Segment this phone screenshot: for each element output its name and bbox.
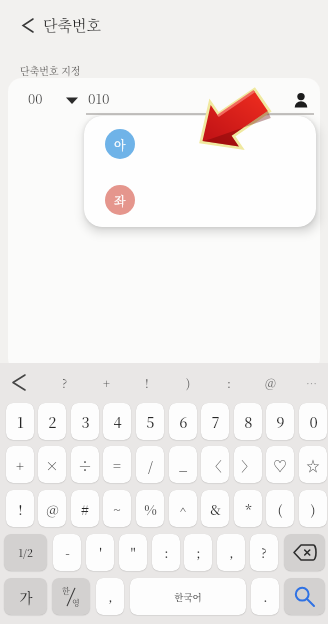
button[interactable]: 단축번호 (0, 0, 328, 50)
button[interactable]: × (38, 446, 66, 483)
staticText: : (227, 374, 231, 391)
button[interactable]: 0 (299, 403, 327, 440)
button[interactable]: ! (133, 367, 161, 398)
staticText: ! (145, 374, 149, 391)
staticText: 가 (19, 587, 33, 606)
staticText: " (130, 543, 136, 562)
button[interactable]: @ (256, 367, 284, 398)
button[interactable]: 〉 (234, 446, 262, 483)
staticText: , (229, 543, 234, 562)
staticText: 6 (179, 411, 188, 432)
staticText: : (164, 543, 169, 562)
staticText: 〉 (241, 455, 255, 474)
button[interactable]: 가 (4, 578, 47, 615)
staticText: 7 (211, 411, 220, 432)
staticText: ) (310, 499, 316, 518)
button[interactable]: 6 (169, 403, 197, 440)
button[interactable]: 9 (266, 403, 294, 440)
staticText: 단축번호 (43, 14, 101, 36)
staticText: 한국어 (174, 590, 202, 604)
button[interactable]: 좌 (105, 185, 135, 215)
button[interactable]: 〈 (201, 446, 229, 483)
button[interactable]: ~ (103, 490, 131, 527)
staticText: ÷ (78, 455, 92, 474)
staticText: @ (46, 499, 59, 518)
button[interactable]: 아 (105, 129, 135, 159)
button[interactable]: = (103, 446, 131, 483)
button[interactable]: : (152, 534, 180, 571)
button[interactable]: 8 (234, 403, 262, 440)
button[interactable]: 1/2 (4, 534, 47, 571)
staticText: 아 (114, 136, 126, 153)
button[interactable]: 한 (52, 578, 90, 615)
button[interactable]: - (53, 534, 81, 571)
button[interactable]: ⋯ (297, 367, 325, 398)
staticText: ~ (113, 499, 121, 518)
staticText: 8 (244, 411, 253, 432)
button[interactable]: @ (38, 490, 66, 527)
button[interactable]: 2 (38, 403, 66, 440)
button[interactable]: ; (184, 534, 212, 571)
staticText: & (210, 499, 221, 518)
button[interactable] (284, 578, 325, 615)
staticText: ! (18, 499, 23, 518)
staticText: 010 (88, 88, 110, 107)
button[interactable]: 7 (201, 403, 229, 440)
staticText: * (245, 499, 252, 518)
button[interactable]: ? (250, 534, 278, 571)
button[interactable]: # (71, 490, 99, 527)
button[interactable]: 00 (28, 89, 43, 108)
button[interactable]: , (96, 578, 124, 615)
button[interactable]: % (136, 490, 164, 527)
staticText: _ (179, 455, 187, 474)
button[interactable]: ? (51, 367, 79, 398)
staticText: - (65, 543, 70, 562)
staticText: × (45, 455, 59, 474)
button[interactable]: " (119, 534, 147, 571)
staticText: 5 (146, 411, 155, 432)
button[interactable]: . (251, 578, 279, 615)
button[interactable]: 3 (71, 403, 99, 440)
staticText: 좌 (114, 192, 126, 209)
button[interactable]: & (201, 490, 229, 527)
staticText: ' (99, 543, 102, 562)
staticText: ? (261, 543, 267, 562)
button[interactable]: ' (86, 534, 114, 571)
staticText: . (263, 587, 268, 606)
button[interactable]: ( (266, 490, 294, 527)
button[interactable]: ) (299, 490, 327, 527)
button[interactable]: / (136, 446, 164, 483)
staticText: 3 (81, 411, 90, 432)
button[interactable]: 4 (103, 403, 131, 440)
button[interactable]: 1 (6, 403, 34, 440)
button[interactable] (284, 534, 325, 571)
staticText: 0 (309, 411, 318, 432)
button[interactable] (13, 375, 25, 390)
button[interactable]: 한국어 (130, 578, 246, 615)
staticText: 한 (62, 585, 70, 596)
staticText: % (144, 499, 157, 518)
button[interactable]: + (92, 367, 120, 398)
staticText: ? (62, 374, 68, 391)
button[interactable] (292, 88, 310, 110)
staticText: , (108, 587, 113, 606)
button[interactable]: , (217, 534, 245, 571)
button[interactable]: ^ (169, 490, 197, 527)
button[interactable]: 5 (136, 403, 164, 440)
button[interactable]: * (234, 490, 262, 527)
button[interactable]: ÷ (71, 446, 99, 483)
staticText: 9 (276, 411, 285, 432)
button[interactable] (66, 97, 78, 104)
staticText: + (16, 455, 24, 474)
staticText: + (103, 374, 110, 391)
button[interactable]: ) (174, 367, 202, 398)
button[interactable]: _ (169, 446, 197, 483)
staticText: ) (186, 374, 191, 391)
button[interactable]: ! (6, 490, 34, 527)
button[interactable]: ♡ (266, 446, 294, 483)
button[interactable]: : (215, 367, 243, 398)
button[interactable]: + (6, 446, 34, 483)
button[interactable]: ☆ (299, 446, 327, 483)
staticText: 영 (72, 597, 80, 608)
staticText: = (113, 455, 121, 474)
